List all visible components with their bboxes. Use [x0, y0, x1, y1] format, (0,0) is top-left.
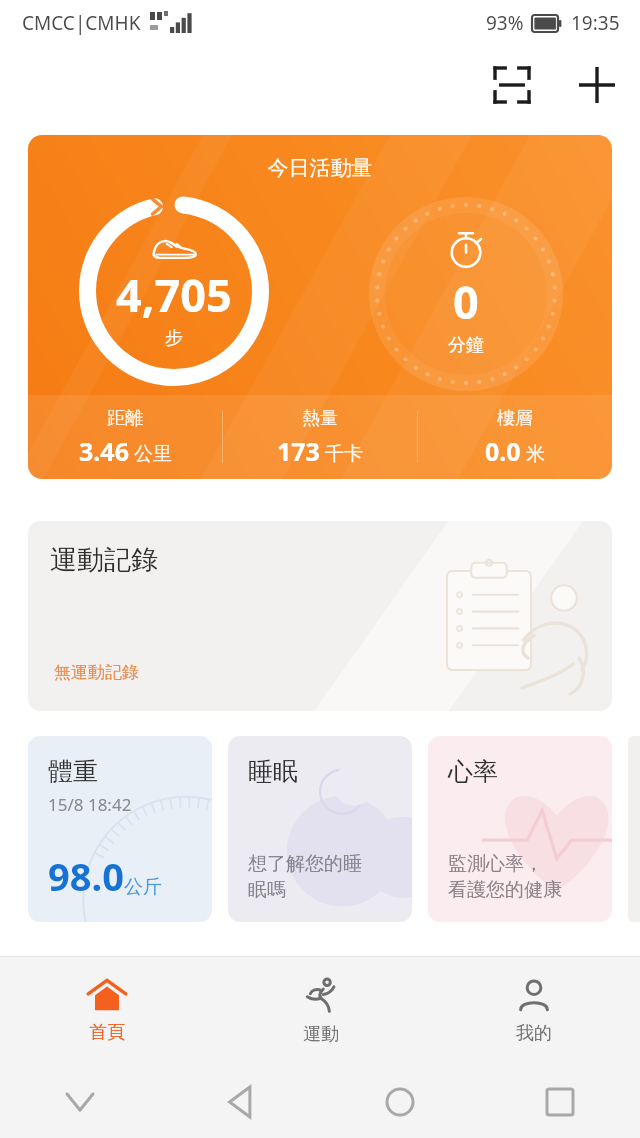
button[interactable]: 運動 [214, 956, 427, 1066]
staticText: 體重 [48, 756, 98, 787]
button[interactable]: 體重 [28, 736, 212, 922]
staticText: 監測心率， 看護您的健康 [448, 852, 562, 902]
staticText: 4,705 [116, 264, 232, 325]
button[interactable]: 睡眠 [228, 736, 412, 922]
button[interactable]: 運動記錄 [28, 521, 612, 711]
button[interactable]: Back [160, 1066, 320, 1138]
staticText: 公斤 [124, 875, 162, 899]
staticText: 0.0 [485, 434, 521, 468]
staticText: 173 [277, 434, 320, 468]
button[interactable]: 首頁 [0, 956, 214, 1066]
staticText: 首頁 [89, 1021, 125, 1044]
staticText: 19:35 [571, 10, 620, 36]
button[interactable]: 我的 [427, 956, 640, 1066]
staticText: 15/8 18:42 [48, 793, 132, 816]
staticText: 0 [453, 271, 479, 332]
staticText: 我的 [516, 1022, 552, 1045]
staticText: 運動 [303, 1023, 339, 1046]
staticText: 米 [526, 442, 545, 466]
staticText: 距離 [107, 407, 143, 430]
staticText: 運動記錄 [50, 543, 158, 577]
button[interactable]: Add [568, 56, 626, 114]
button[interactable]: 心率 [428, 736, 612, 922]
button[interactable]: 今日活動量 [28, 135, 612, 479]
staticText: 睡眠 [248, 756, 298, 787]
staticText: 無運動記錄 [54, 662, 139, 683]
staticText: 93% [486, 10, 524, 36]
staticText: 今日活動量 [28, 155, 612, 181]
button[interactable]: Hide [0, 1066, 160, 1138]
staticText: 分鐘 [448, 334, 484, 357]
staticText: 98.0 [48, 850, 124, 902]
staticText: 3.46 [79, 434, 129, 468]
staticText: 千卡 [325, 442, 363, 466]
button[interactable]: Recents [480, 1066, 640, 1138]
staticText: 步 [165, 327, 183, 350]
staticText: 公里 [134, 442, 172, 466]
staticText: 心率 [448, 756, 498, 787]
button[interactable]: Scan code [483, 56, 541, 114]
staticText: 樓層 [497, 407, 533, 430]
staticText: CMCC|CMHK [22, 10, 141, 36]
staticText: 熱量 [302, 407, 338, 430]
staticText: 想了解您的睡 眠嗎 [248, 852, 362, 902]
button[interactable]: Home [320, 1066, 480, 1138]
